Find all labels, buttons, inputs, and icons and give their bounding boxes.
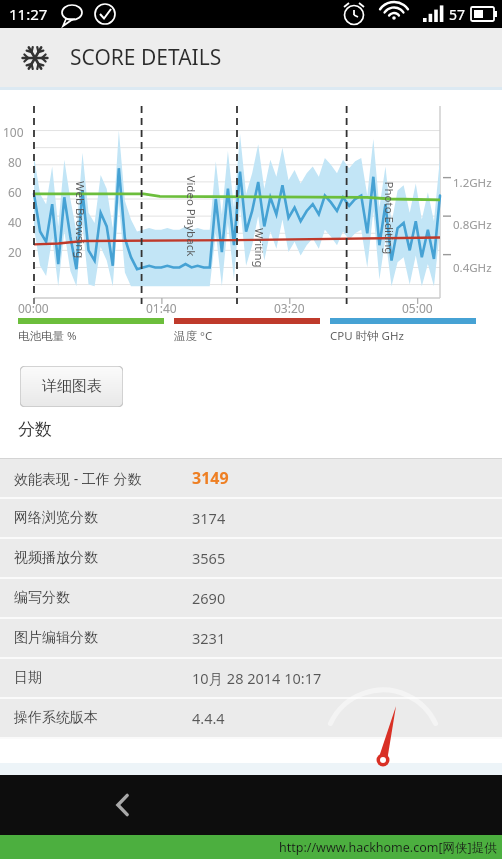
staticText: 57 xyxy=(449,5,466,24)
button[interactable]: 日期 xyxy=(0,659,502,697)
staticText: 3149 xyxy=(192,467,229,489)
staticText: CPU 时钟 GHz xyxy=(330,328,404,344)
staticText: 视频播放分数 xyxy=(14,549,98,567)
staticText: 20 xyxy=(8,244,22,260)
staticText: 3174 xyxy=(192,508,226,528)
staticText: 网络浏览分数 xyxy=(14,509,98,527)
staticText: 编写分数 xyxy=(14,589,70,607)
staticText: 2690 xyxy=(192,588,226,608)
staticText: 电池电量 % xyxy=(18,328,77,344)
staticText: 80 xyxy=(8,154,22,170)
button[interactable]: 详细图表 xyxy=(20,366,123,407)
staticText: 4.4.4 xyxy=(192,708,225,728)
staticText: 10月 28 2014 10:17 xyxy=(192,668,322,688)
staticText: Video Playback xyxy=(182,175,198,256)
staticText: 分数 xyxy=(18,419,52,440)
button[interactable]: Back xyxy=(96,778,150,832)
staticText: 1.2GHz xyxy=(453,175,492,191)
staticText: 效能表现 - 工作 分数 xyxy=(14,469,142,488)
staticText: Writing xyxy=(251,228,267,268)
staticText: Web Browsing xyxy=(72,181,88,259)
button[interactable]: 编写分数 xyxy=(0,579,502,617)
staticText: 0.8GHz xyxy=(453,217,492,233)
staticText: Photo Editing xyxy=(380,181,396,254)
staticText: 100 xyxy=(3,124,24,140)
button[interactable]: 图片编辑分数 xyxy=(0,619,502,657)
staticText: 00:00 xyxy=(18,300,49,316)
staticText: 温度 °C xyxy=(174,328,213,344)
staticText: 60 xyxy=(8,184,22,200)
button[interactable]: 网络浏览分数 xyxy=(0,499,502,537)
other: Benchmark icon xyxy=(22,45,48,71)
staticText: 操作系统版本 xyxy=(14,709,98,727)
staticText: 11:27 xyxy=(9,4,48,24)
staticText: SCORE DETAILS xyxy=(70,43,222,72)
staticText: http://www.hackhome.com[网侠]提供 xyxy=(279,839,497,856)
staticText: 40 xyxy=(8,214,22,230)
staticText: 日期 xyxy=(14,669,42,687)
staticText: 3565 xyxy=(192,548,226,568)
button[interactable]: 效能表现 - 工作 分数 xyxy=(0,459,502,497)
button[interactable]: 操作系统版本 xyxy=(0,699,502,737)
staticText: 01:40 xyxy=(146,300,177,316)
button[interactable]: Benchmark icon xyxy=(0,28,502,87)
staticText: 3231 xyxy=(192,628,226,648)
staticText: 03:20 xyxy=(274,300,305,316)
button[interactable]: 视频播放分数 xyxy=(0,539,502,577)
staticText: 0.4GHz xyxy=(453,260,492,276)
staticText: 图片编辑分数 xyxy=(14,629,98,647)
staticText: 05:00 xyxy=(402,300,433,316)
staticText: 详细图表 xyxy=(42,377,102,396)
